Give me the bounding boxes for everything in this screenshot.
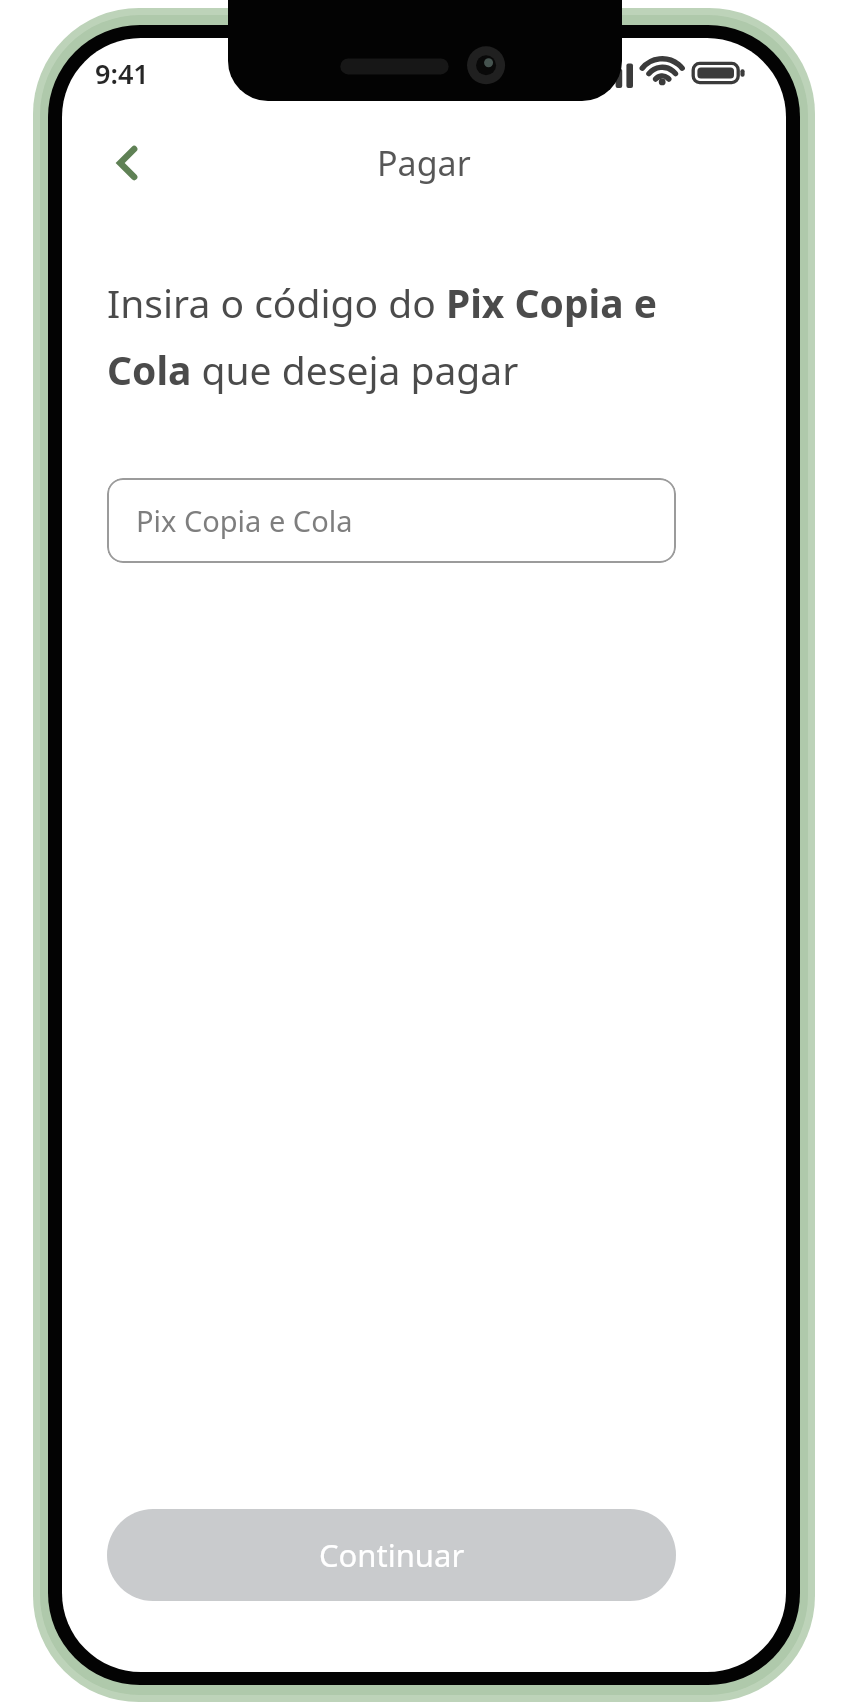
staticText: Pix Copia e Cola (136, 501, 353, 540)
button[interactable]: Continuar (107, 1509, 676, 1601)
staticText: 9:41 (95, 55, 149, 92)
staticText: Insira o código do Pix Copia e Cola que … (107, 276, 662, 396)
staticText: Pagar (377, 140, 471, 186)
button[interactable]: Voltar (97, 133, 157, 193)
button[interactable]: Pix Copia e Cola (107, 478, 676, 563)
staticText: Continuar (319, 1534, 465, 1576)
